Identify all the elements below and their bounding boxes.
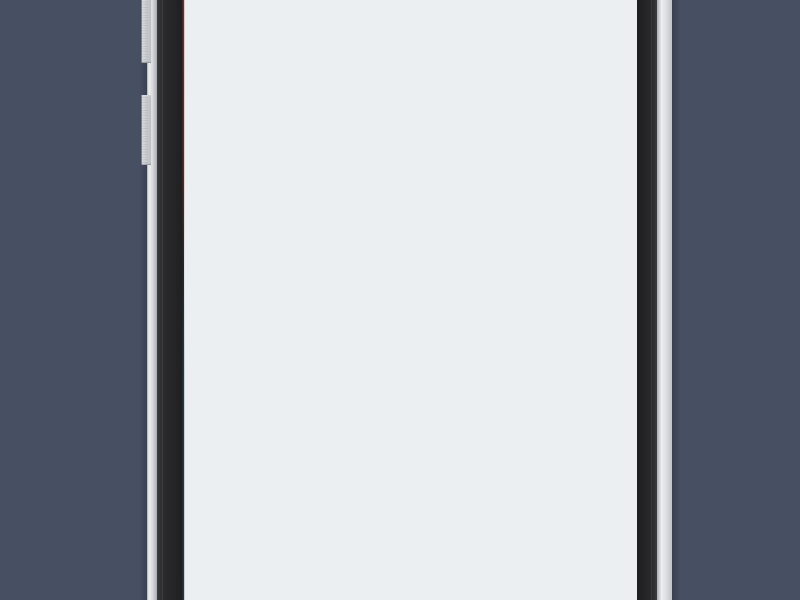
button[interactable]: Phone screen bbox=[0, 0, 800, 600]
